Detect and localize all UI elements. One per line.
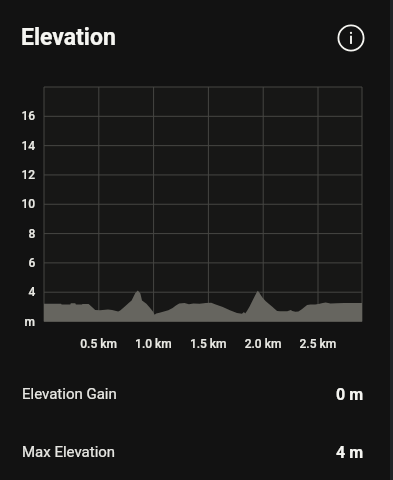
staticText: 4 m xyxy=(336,443,364,462)
staticText: Elevation Gain xyxy=(22,385,117,403)
staticText: Elevation xyxy=(21,24,116,51)
button[interactable]: Elevation Gain xyxy=(0,365,393,423)
staticText: 0 m xyxy=(336,385,364,404)
button[interactable]: Max Elevation xyxy=(0,423,393,480)
button[interactable]: Info xyxy=(331,18,371,58)
staticText: Max Elevation xyxy=(22,443,116,461)
